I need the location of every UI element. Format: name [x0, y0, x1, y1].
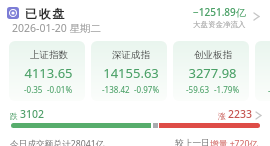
button[interactable]: 科创50: [255, 41, 270, 101]
staticText: 3277.98: [188, 64, 237, 82]
staticText: 3102: [20, 107, 45, 121]
staticText: -0.35: [24, 84, 43, 95]
staticText: 深证成指: [112, 49, 150, 61]
staticText: 4113.65: [24, 64, 73, 82]
button[interactable]: 创业板指: [173, 41, 249, 101]
staticText: -1.79%: [214, 84, 240, 95]
button[interactable]: 上证指数: [9, 41, 85, 101]
staticText: 增量 +720亿: [210, 138, 259, 146]
staticText: 创业板指: [194, 49, 232, 61]
button[interactable]: 涨: [218, 107, 253, 121]
staticText: -22.01: [268, 85, 270, 96]
staticText: 跌: [10, 111, 18, 121]
staticText: -0.01%: [47, 84, 73, 95]
staticText: 上证指数: [30, 49, 68, 61]
staticText: 已收盘: [25, 6, 66, 21]
staticText: −1251.89亿: [193, 5, 246, 19]
button[interactable]: Capital flow details: [249, 9, 263, 23]
staticText: 14155.63: [103, 64, 159, 82]
staticText: 2026-01-20 星期二: [12, 21, 102, 35]
staticText: 大盘资金净流入: [193, 20, 246, 29]
button[interactable]: 深证成指: [91, 41, 167, 101]
staticText: 今日成交额总计28041亿: [10, 138, 105, 146]
button[interactable]: [7, 7, 19, 19]
staticText: -138.42: [102, 84, 130, 95]
staticText: 涨: [218, 111, 226, 121]
staticText: -0.97%: [134, 84, 160, 95]
staticText: 较上一日: [175, 138, 210, 146]
staticText: 2233: [228, 107, 253, 121]
staticText: -59.63: [186, 84, 210, 95]
button[interactable]: −1251.89亿: [160, 5, 246, 29]
button[interactable]: Advancers and decliners: [251, 108, 265, 122]
